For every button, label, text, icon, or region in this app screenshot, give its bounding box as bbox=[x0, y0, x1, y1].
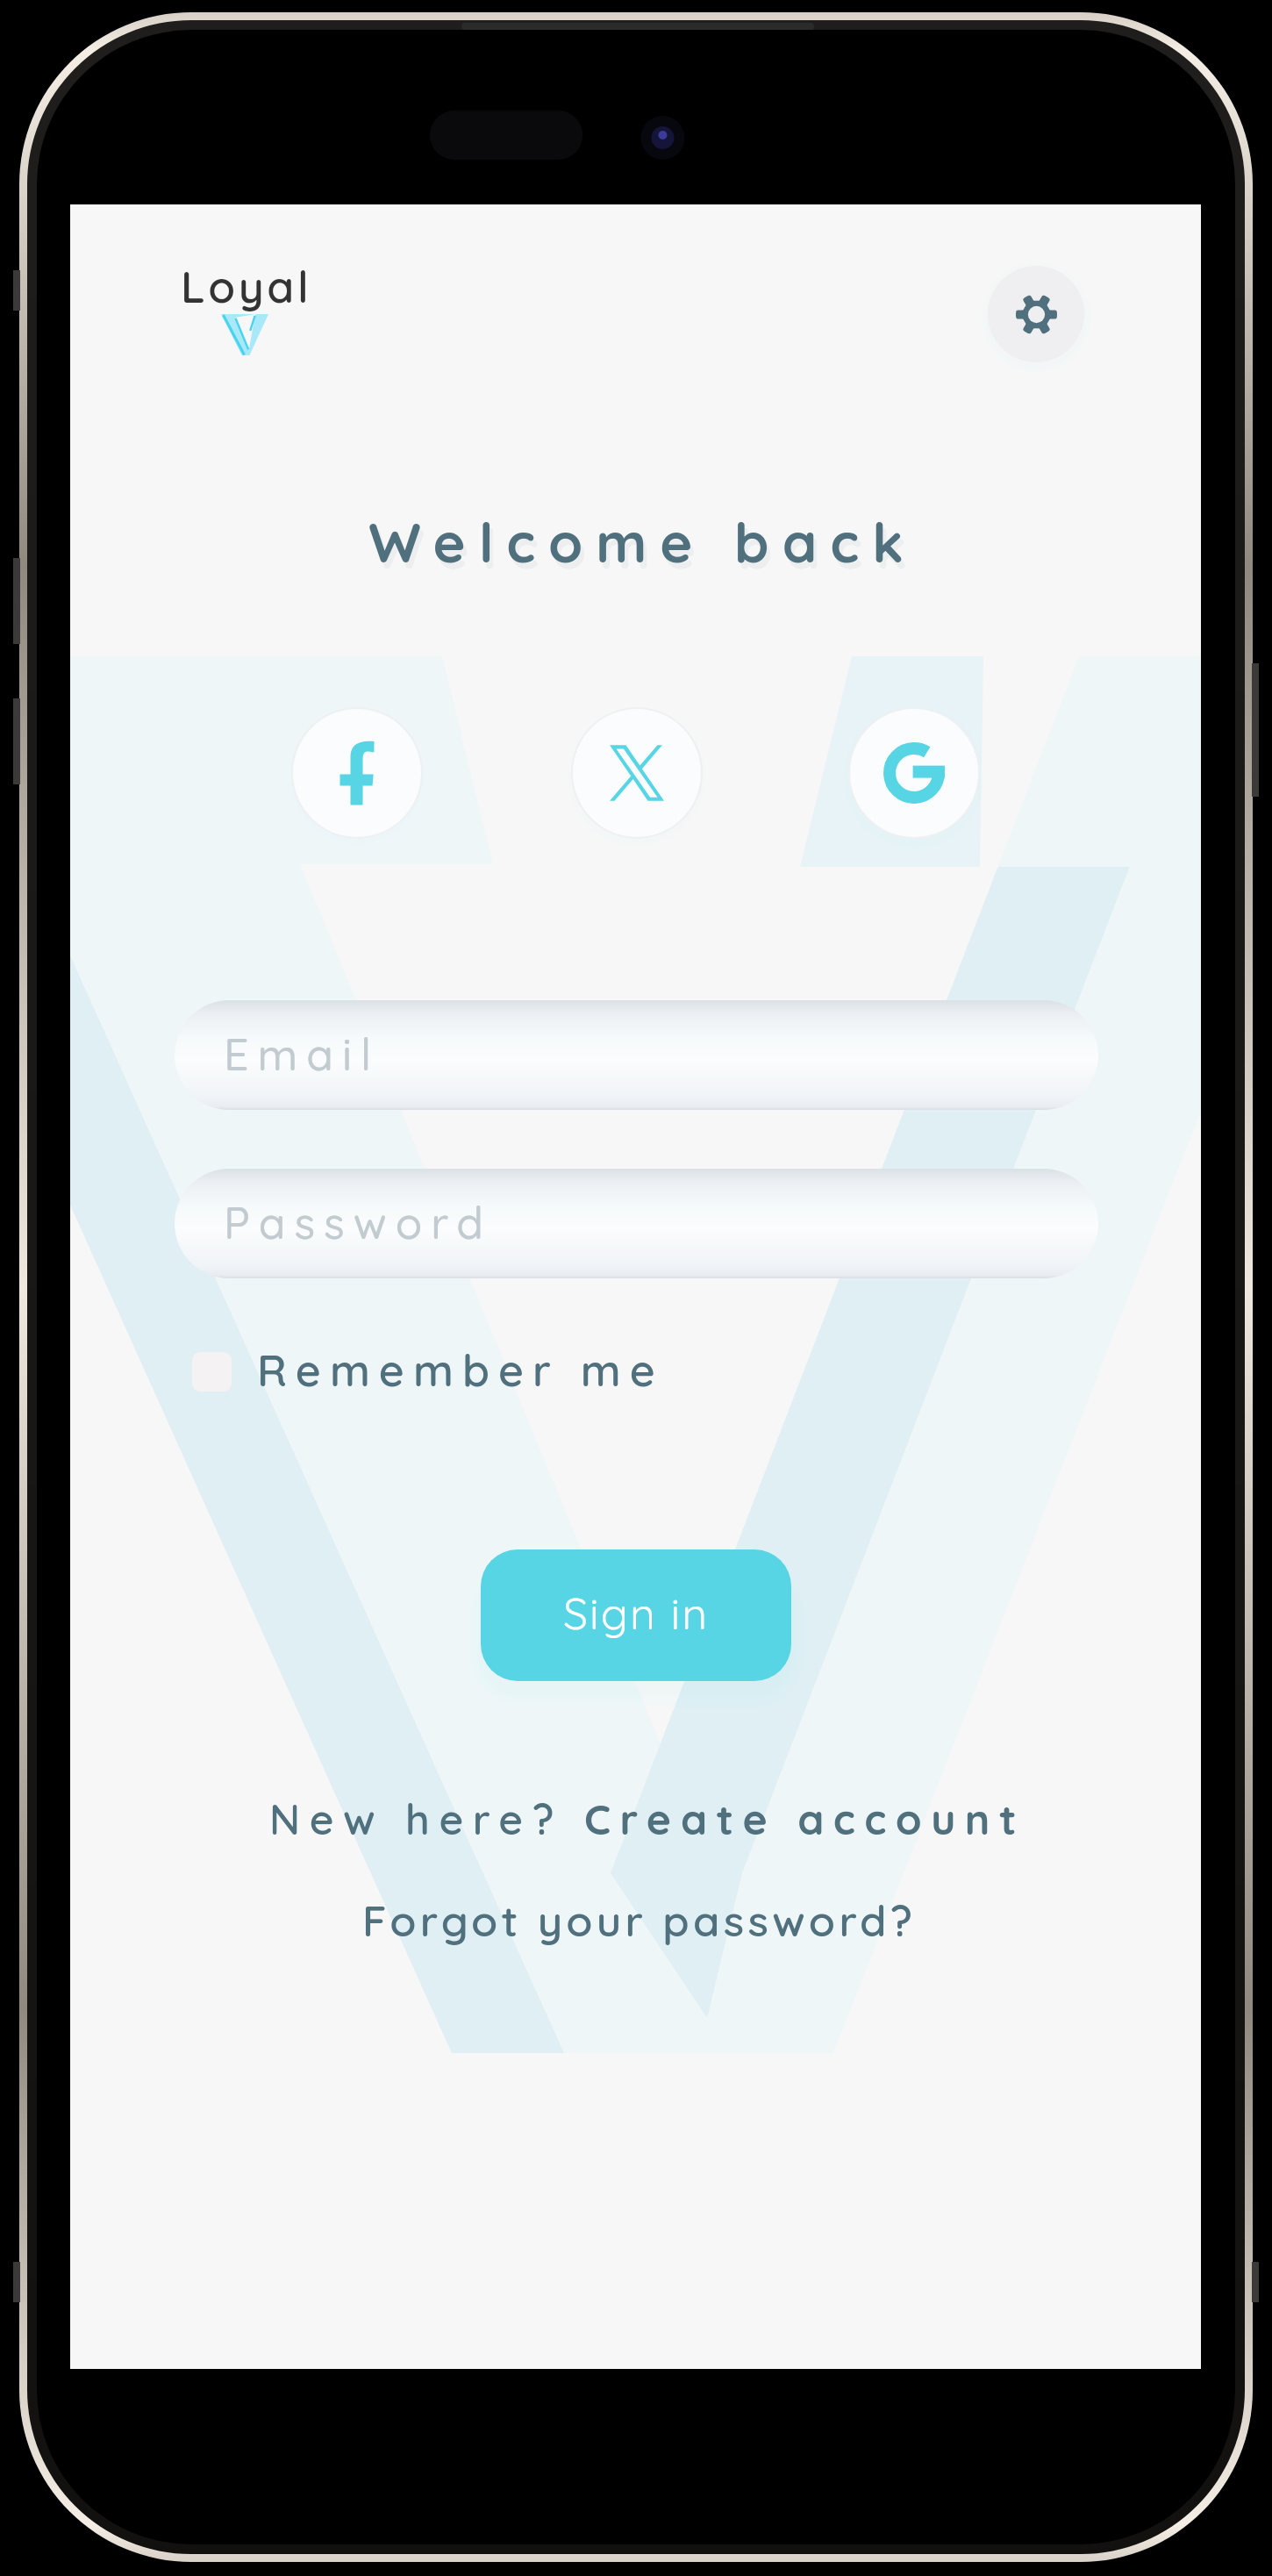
button[interactable]: New here? bbox=[269, 1792, 1026, 1845]
button[interactable]: Settings bbox=[988, 266, 1084, 362]
staticText: New here? bbox=[269, 1792, 584, 1845]
staticText: Remember me bbox=[257, 1342, 664, 1398]
staticText: Create account bbox=[584, 1792, 1026, 1845]
button[interactable]: Sign in bbox=[481, 1549, 791, 1681]
button[interactable]: Sign in with Facebook bbox=[293, 709, 421, 837]
button[interactable]: Forgot your password? bbox=[362, 1893, 917, 1947]
staticText: Sign in bbox=[563, 1585, 710, 1641]
button[interactable]: Remember me bbox=[192, 1342, 664, 1401]
staticText: Password bbox=[224, 1195, 492, 1250]
staticText: Welcome back bbox=[77, 507, 1201, 576]
staticText: Email bbox=[224, 1027, 381, 1082]
button[interactable]: Sign in with Google bbox=[850, 709, 978, 837]
staticText: Welcome back bbox=[81, 513, 1201, 583]
button[interactable]: Email bbox=[175, 1000, 1098, 1110]
button[interactable]: Sign in with X bbox=[573, 709, 701, 837]
button[interactable]: Loyal bbox=[181, 259, 312, 314]
button[interactable]: Password bbox=[175, 1169, 1098, 1278]
